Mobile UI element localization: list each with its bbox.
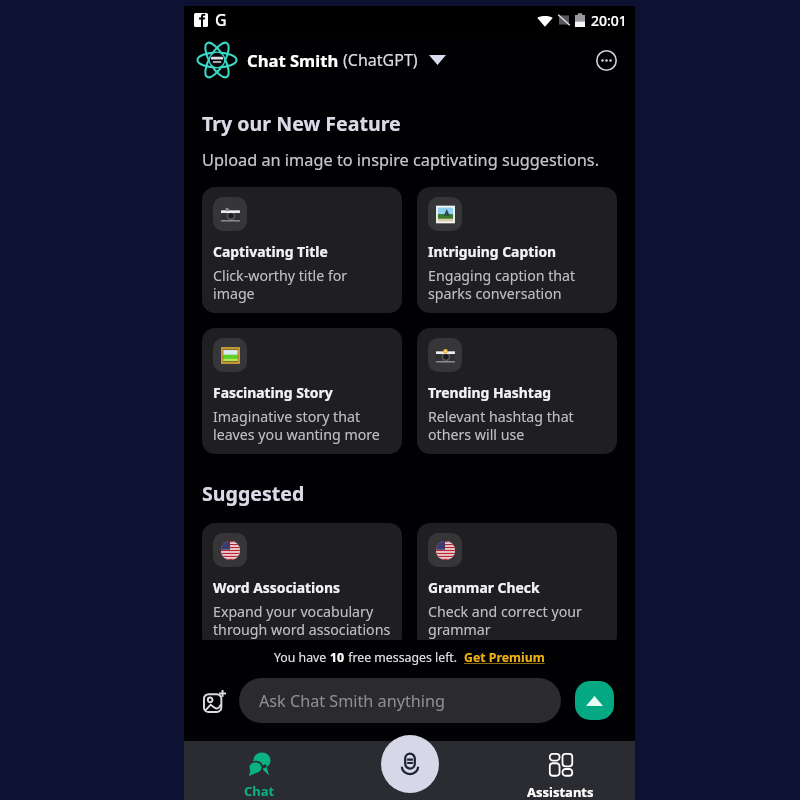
button[interactable]: Add image bbox=[197, 684, 231, 718]
staticText: Upload an image to inspire captivating s… bbox=[202, 149, 600, 171]
button[interactable]: Assistants bbox=[485, 741, 635, 800]
button[interactable]: Word Associations bbox=[202, 523, 402, 649]
staticText: Relevant hashtag that others will use bbox=[428, 407, 607, 444]
staticText: Fascinating Story bbox=[213, 383, 333, 402]
staticText: Captivating Title bbox=[213, 242, 328, 261]
staticText: free messages left. bbox=[345, 649, 464, 666]
button[interactable]: Fascinating Story bbox=[202, 328, 402, 454]
button[interactable]: Chat bbox=[184, 741, 335, 800]
staticText: Chat Smith bbox=[247, 49, 339, 72]
staticText: Expand your vocabulary through word asso… bbox=[213, 602, 392, 639]
staticText: 10 bbox=[330, 649, 345, 666]
button[interactable]: Send bbox=[575, 681, 614, 720]
button[interactable]: Grammar Check bbox=[417, 523, 617, 649]
staticText: Intriguing Caption bbox=[428, 242, 557, 261]
staticText: Check and correct your grammar bbox=[428, 602, 607, 639]
staticText: Engaging caption that sparks conversatio… bbox=[428, 266, 607, 303]
staticText: Trending Hashtag bbox=[428, 383, 552, 402]
staticText: (ChatGPT) bbox=[343, 49, 418, 71]
staticText: Grammar Check bbox=[428, 578, 540, 597]
button[interactable]: Voice input bbox=[381, 735, 439, 793]
staticText: You have bbox=[274, 649, 330, 666]
staticText: Try our New Feature bbox=[202, 110, 401, 137]
staticText: Suggested bbox=[202, 480, 305, 507]
staticText: 20:01 bbox=[591, 11, 627, 30]
button[interactable]: Get Premium bbox=[464, 649, 545, 666]
button[interactable]: Captivating Title bbox=[202, 187, 402, 313]
button[interactable]: Intriguing Caption bbox=[417, 187, 617, 313]
staticText: Ask Chat Smith anything bbox=[259, 690, 445, 712]
button[interactable]: Trending Hashtag bbox=[417, 328, 617, 454]
button[interactable]: More options bbox=[594, 48, 618, 72]
staticText: G bbox=[215, 9, 227, 31]
staticText: Assistants bbox=[527, 783, 594, 800]
staticText: Click-worthy title for image bbox=[213, 266, 392, 303]
button[interactable]: Change model bbox=[426, 49, 448, 71]
staticText: Chat bbox=[244, 782, 275, 800]
staticText: Imaginative story that leaves you wantin… bbox=[213, 407, 392, 444]
button[interactable]: Ask Chat Smith anything bbox=[239, 678, 561, 723]
staticText: Word Associations bbox=[213, 578, 340, 597]
